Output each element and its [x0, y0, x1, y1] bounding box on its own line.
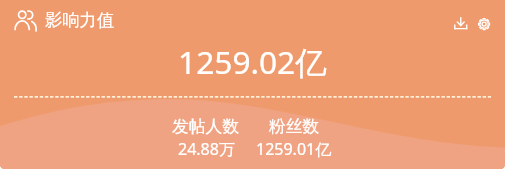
button[interactable]: 粉丝数: [224, 116, 364, 160]
staticText: 影响力值: [45, 9, 115, 31]
staticText: 1259.02亿: [178, 40, 327, 83]
staticText: 发帖人数: [172, 116, 240, 137]
staticText: 1259.01亿: [256, 138, 332, 160]
staticText: 粉丝数: [269, 116, 320, 137]
button[interactable]: Download: [445, 8, 475, 38]
button[interactable]: Settings: [469, 8, 499, 38]
staticText: 24.88万: [178, 138, 235, 160]
button[interactable]: 发帖人数: [136, 116, 276, 160]
